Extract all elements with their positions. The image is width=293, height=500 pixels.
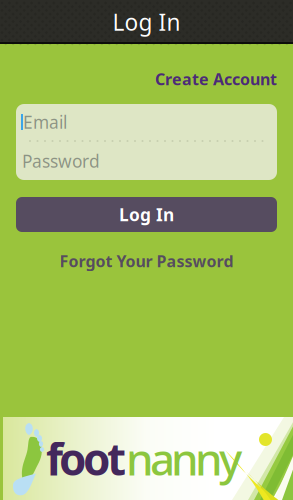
button[interactable]: Forgot Your Password bbox=[59, 249, 233, 273]
staticText: Forgot Your Password bbox=[59, 250, 233, 272]
button[interactable]: Create Account bbox=[155, 67, 277, 91]
staticText: foot bbox=[46, 429, 126, 488]
staticText: nanny bbox=[126, 429, 242, 488]
staticText: Log In bbox=[119, 203, 174, 226]
staticText: Log In bbox=[112, 7, 180, 37]
button[interactable]: Log In bbox=[16, 197, 277, 232]
staticText: Create Account bbox=[155, 68, 277, 90]
staticText: Email bbox=[23, 110, 67, 133]
staticText: Password bbox=[22, 149, 100, 172]
